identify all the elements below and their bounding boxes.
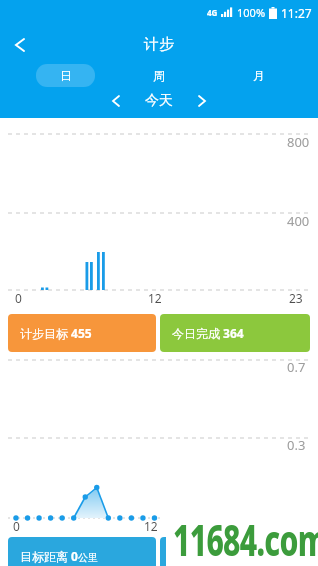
button[interactable] [160, 537, 310, 566]
staticText: 周 [153, 68, 165, 83]
staticText: 计步目标 455 [20, 325, 92, 341]
staticText: 0 [15, 290, 22, 306]
staticText: 12 [144, 518, 158, 534]
staticText: 0 [13, 518, 20, 534]
staticText: 月 [253, 68, 265, 83]
staticText: 日 [60, 68, 72, 83]
staticText: 11:27 [281, 5, 312, 21]
button[interactable]: 今日完成 364 [160, 314, 310, 352]
staticText: 今日完成 364 [172, 325, 244, 341]
staticText: 计步 [144, 35, 174, 54]
staticText: 今天 [145, 92, 173, 110]
button[interactable]: 日 [36, 64, 95, 87]
button[interactable]: 周 [129, 64, 188, 87]
staticText: 100% [237, 5, 266, 20]
staticText: 0.7 [287, 358, 306, 376]
staticText: 0.3 [287, 436, 306, 454]
staticText: 400 [287, 212, 310, 230]
staticText: 11684.com [173, 510, 318, 566]
staticText: 23 [289, 290, 303, 306]
button[interactable]: 计步目标 455 [8, 314, 156, 352]
button[interactable] [4, 32, 36, 58]
button[interactable] [104, 90, 128, 112]
staticText: 800 [287, 133, 310, 151]
button[interactable] [190, 90, 214, 112]
staticText: 4G [207, 7, 218, 18]
button[interactable]: 目标距离 0公里 [8, 537, 156, 566]
staticText: 12 [148, 290, 162, 306]
button[interactable]: 月 [229, 64, 288, 87]
staticText: 目标距离 0公里 [20, 548, 98, 564]
